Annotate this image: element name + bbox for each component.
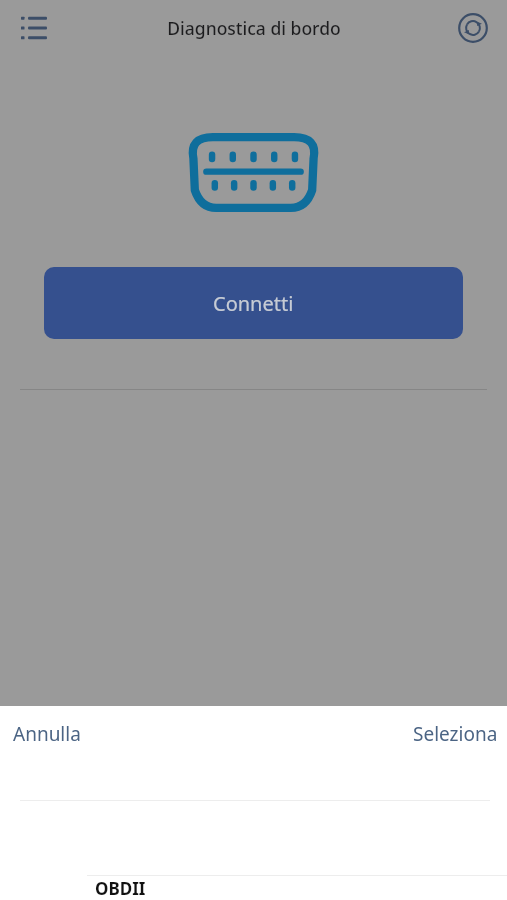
staticText: Diagnostica di bordo [167,16,341,40]
staticText: Annulla [13,721,81,747]
button[interactable]: Seleziona [401,713,507,755]
button[interactable]: Menu [12,6,56,50]
staticText: Connetti [213,290,294,317]
staticText: OBDII [95,877,146,900]
staticText: Seleziona [413,721,498,747]
button[interactable]: Connetti [44,267,463,339]
button[interactable]: OBDII [0,876,507,900]
button[interactable]: Annulla [0,713,93,755]
button[interactable]: Refresh [451,6,495,50]
